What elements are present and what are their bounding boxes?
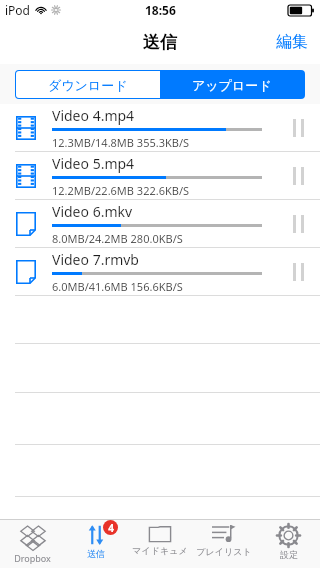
staticText: マイドキュメント [128,545,192,556]
staticText: 8.0MB/24.2MB 280.0KB/S [52,231,183,246]
staticText: 4 [108,521,114,535]
button[interactable]: Dropbox [0,520,64,568]
staticText: 6.0MB/41.6MB 156.6KB/S [52,279,183,294]
button[interactable]: 編集 [264,22,320,62]
staticText: 18:56 [145,2,176,18]
staticText: 送信 [87,548,105,559]
staticText: Video 6.mkv [52,202,133,221]
button[interactable]: Pause [276,104,320,151]
button[interactable]: Video 6.mkv [0,200,320,248]
button[interactable]: ダウンロード [16,71,160,98]
button[interactable]: Playlist [192,520,256,568]
staticText: 12.3MB/14.8MB 355.3KB/S [52,135,190,150]
button[interactable]: Pause [276,152,320,199]
staticText: Dropbox [14,552,51,564]
other: Transfers [85,524,107,546]
button[interactable]: My Documents [128,520,192,568]
staticText: Video 5.mp4 [52,154,135,173]
staticText: ダウンロード [48,77,128,93]
staticText: 設定 [280,549,298,560]
button[interactable]: Video 5.mp4 [0,152,320,200]
button[interactable]: Pause [276,200,320,247]
staticText: Video 4.mp4 [52,106,135,125]
staticText: アップロード [192,77,272,93]
other: Settings [277,524,300,547]
button[interactable]: Video 7.rmvb [0,248,320,296]
button[interactable]: Pause [276,248,320,295]
button[interactable]: アップロード [160,71,304,98]
staticText: 送信 [143,32,177,53]
other: Playlist [212,524,236,544]
staticText: 編集 [276,32,308,52]
button[interactable]: Transfers [64,520,128,568]
other: My Documents [148,524,172,543]
button[interactable]: Video 4.mp4 [0,104,320,152]
button[interactable]: Settings [256,520,320,568]
staticText: プレイリスト [196,546,252,557]
other: Dropbox [20,524,46,550]
staticText: iPod [5,2,30,18]
staticText: Video 7.rmvb [52,250,139,269]
staticText: 12.2MB/22.6MB 322.6KB/S [52,183,190,198]
